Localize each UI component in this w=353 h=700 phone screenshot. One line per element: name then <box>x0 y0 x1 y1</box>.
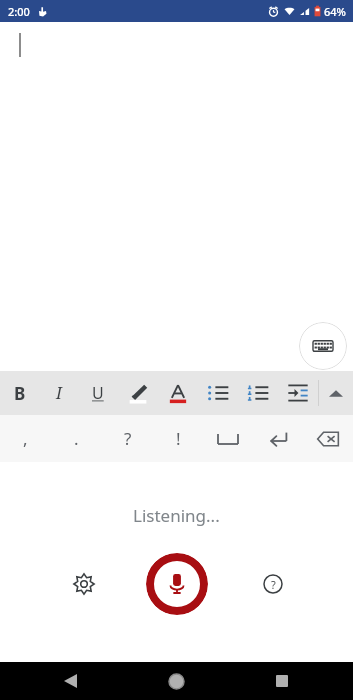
button[interactable]: Collapse toolbar <box>319 371 353 415</box>
staticText: Listening... <box>133 504 220 527</box>
staticText: ? <box>124 427 132 450</box>
button[interactable]: Switch to keyboard <box>299 322 347 370</box>
staticText: I <box>56 382 62 404</box>
button[interactable]: Recent apps <box>229 662 335 700</box>
button[interactable]: Bulleted list <box>198 371 238 415</box>
button[interactable]: Numbered list <box>238 371 278 415</box>
button[interactable]: Stop listening <box>146 553 208 615</box>
staticText: 2:00 <box>8 4 30 19</box>
staticText: ! <box>176 427 181 450</box>
button[interactable]: Question mark <box>102 415 153 462</box>
button[interactable]: Backspace <box>303 415 353 462</box>
button[interactable]: Help <box>251 562 295 606</box>
button[interactable]: Back <box>18 662 123 700</box>
staticText: 64% <box>324 4 346 19</box>
button[interactable]: Italic <box>39 371 78 415</box>
button[interactable]: Underline <box>78 371 118 415</box>
button[interactable]: Enter <box>253 415 303 462</box>
staticText: ? <box>271 577 276 592</box>
staticText: . <box>74 427 79 450</box>
button[interactable]: Highlight <box>118 371 158 415</box>
staticText: U <box>92 382 104 404</box>
button[interactable]: Exclamation mark <box>153 415 203 462</box>
button[interactable]: Settings <box>62 562 106 606</box>
button[interactable]: Comma <box>0 415 51 462</box>
button[interactable]: Home <box>123 662 229 700</box>
button[interactable]: Period <box>51 415 102 462</box>
button[interactable]: Space <box>203 415 253 462</box>
button[interactable]: Text color <box>158 371 198 415</box>
staticText: , <box>23 427 28 450</box>
button[interactable]: Indent <box>278 371 318 415</box>
button[interactable]: Bold <box>0 371 39 415</box>
staticText: B <box>14 382 26 405</box>
